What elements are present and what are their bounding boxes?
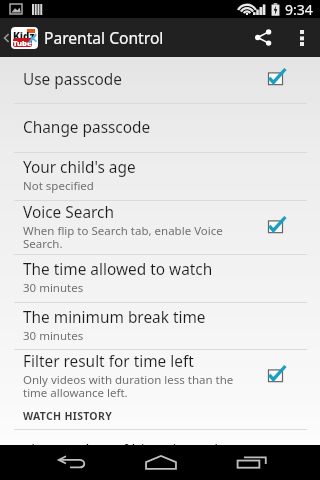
staticText: 30 minutes bbox=[23, 280, 84, 296]
button[interactable]: The time allowed to watch bbox=[0, 255, 320, 302]
staticText: Filter result for time left bbox=[23, 351, 194, 372]
staticText: When flip to Search tab, enable Voice Se… bbox=[23, 223, 223, 252]
button[interactable]: Your child's age bbox=[0, 153, 320, 200]
button[interactable]: The minimum break time bbox=[0, 303, 320, 349]
staticText: Your child's age bbox=[23, 157, 136, 178]
button[interactable]: Change passcode bbox=[0, 104, 320, 152]
staticText: 30 minutes bbox=[23, 328, 84, 344]
staticText: Only videos with duration less than the … bbox=[23, 372, 234, 401]
staticText: 9:34 bbox=[285, 0, 313, 18]
staticText: Change passcode bbox=[23, 117, 151, 138]
staticText: Tube bbox=[13, 38, 32, 47]
staticText: The minimum break time bbox=[23, 307, 206, 328]
button[interactable]: More options bbox=[284, 18, 320, 57]
staticText: Parental Control bbox=[44, 27, 164, 48]
staticText: WATCH HISTORY bbox=[23, 409, 113, 423]
button[interactable]: Share bbox=[242, 18, 284, 57]
button[interactable]: Recent apps bbox=[220, 445, 283, 480]
button[interactable]: Voice Search bbox=[0, 201, 320, 254]
staticText: Kidz bbox=[13, 29, 35, 43]
staticText: The time allowed to watch bbox=[23, 259, 213, 280]
button[interactable]: Back bbox=[40, 445, 103, 480]
staticText: Use passcode bbox=[23, 69, 122, 90]
button[interactable]: Use passcode bbox=[0, 57, 320, 103]
staticText: The number of histories to keep bbox=[23, 439, 249, 445]
button[interactable]: Filter result for time left bbox=[0, 350, 320, 403]
staticText: Not specified bbox=[23, 178, 94, 194]
button[interactable]: Home bbox=[130, 445, 192, 480]
button[interactable]: Navigate up bbox=[0, 27, 38, 49]
staticText: Voice Search bbox=[23, 202, 114, 223]
